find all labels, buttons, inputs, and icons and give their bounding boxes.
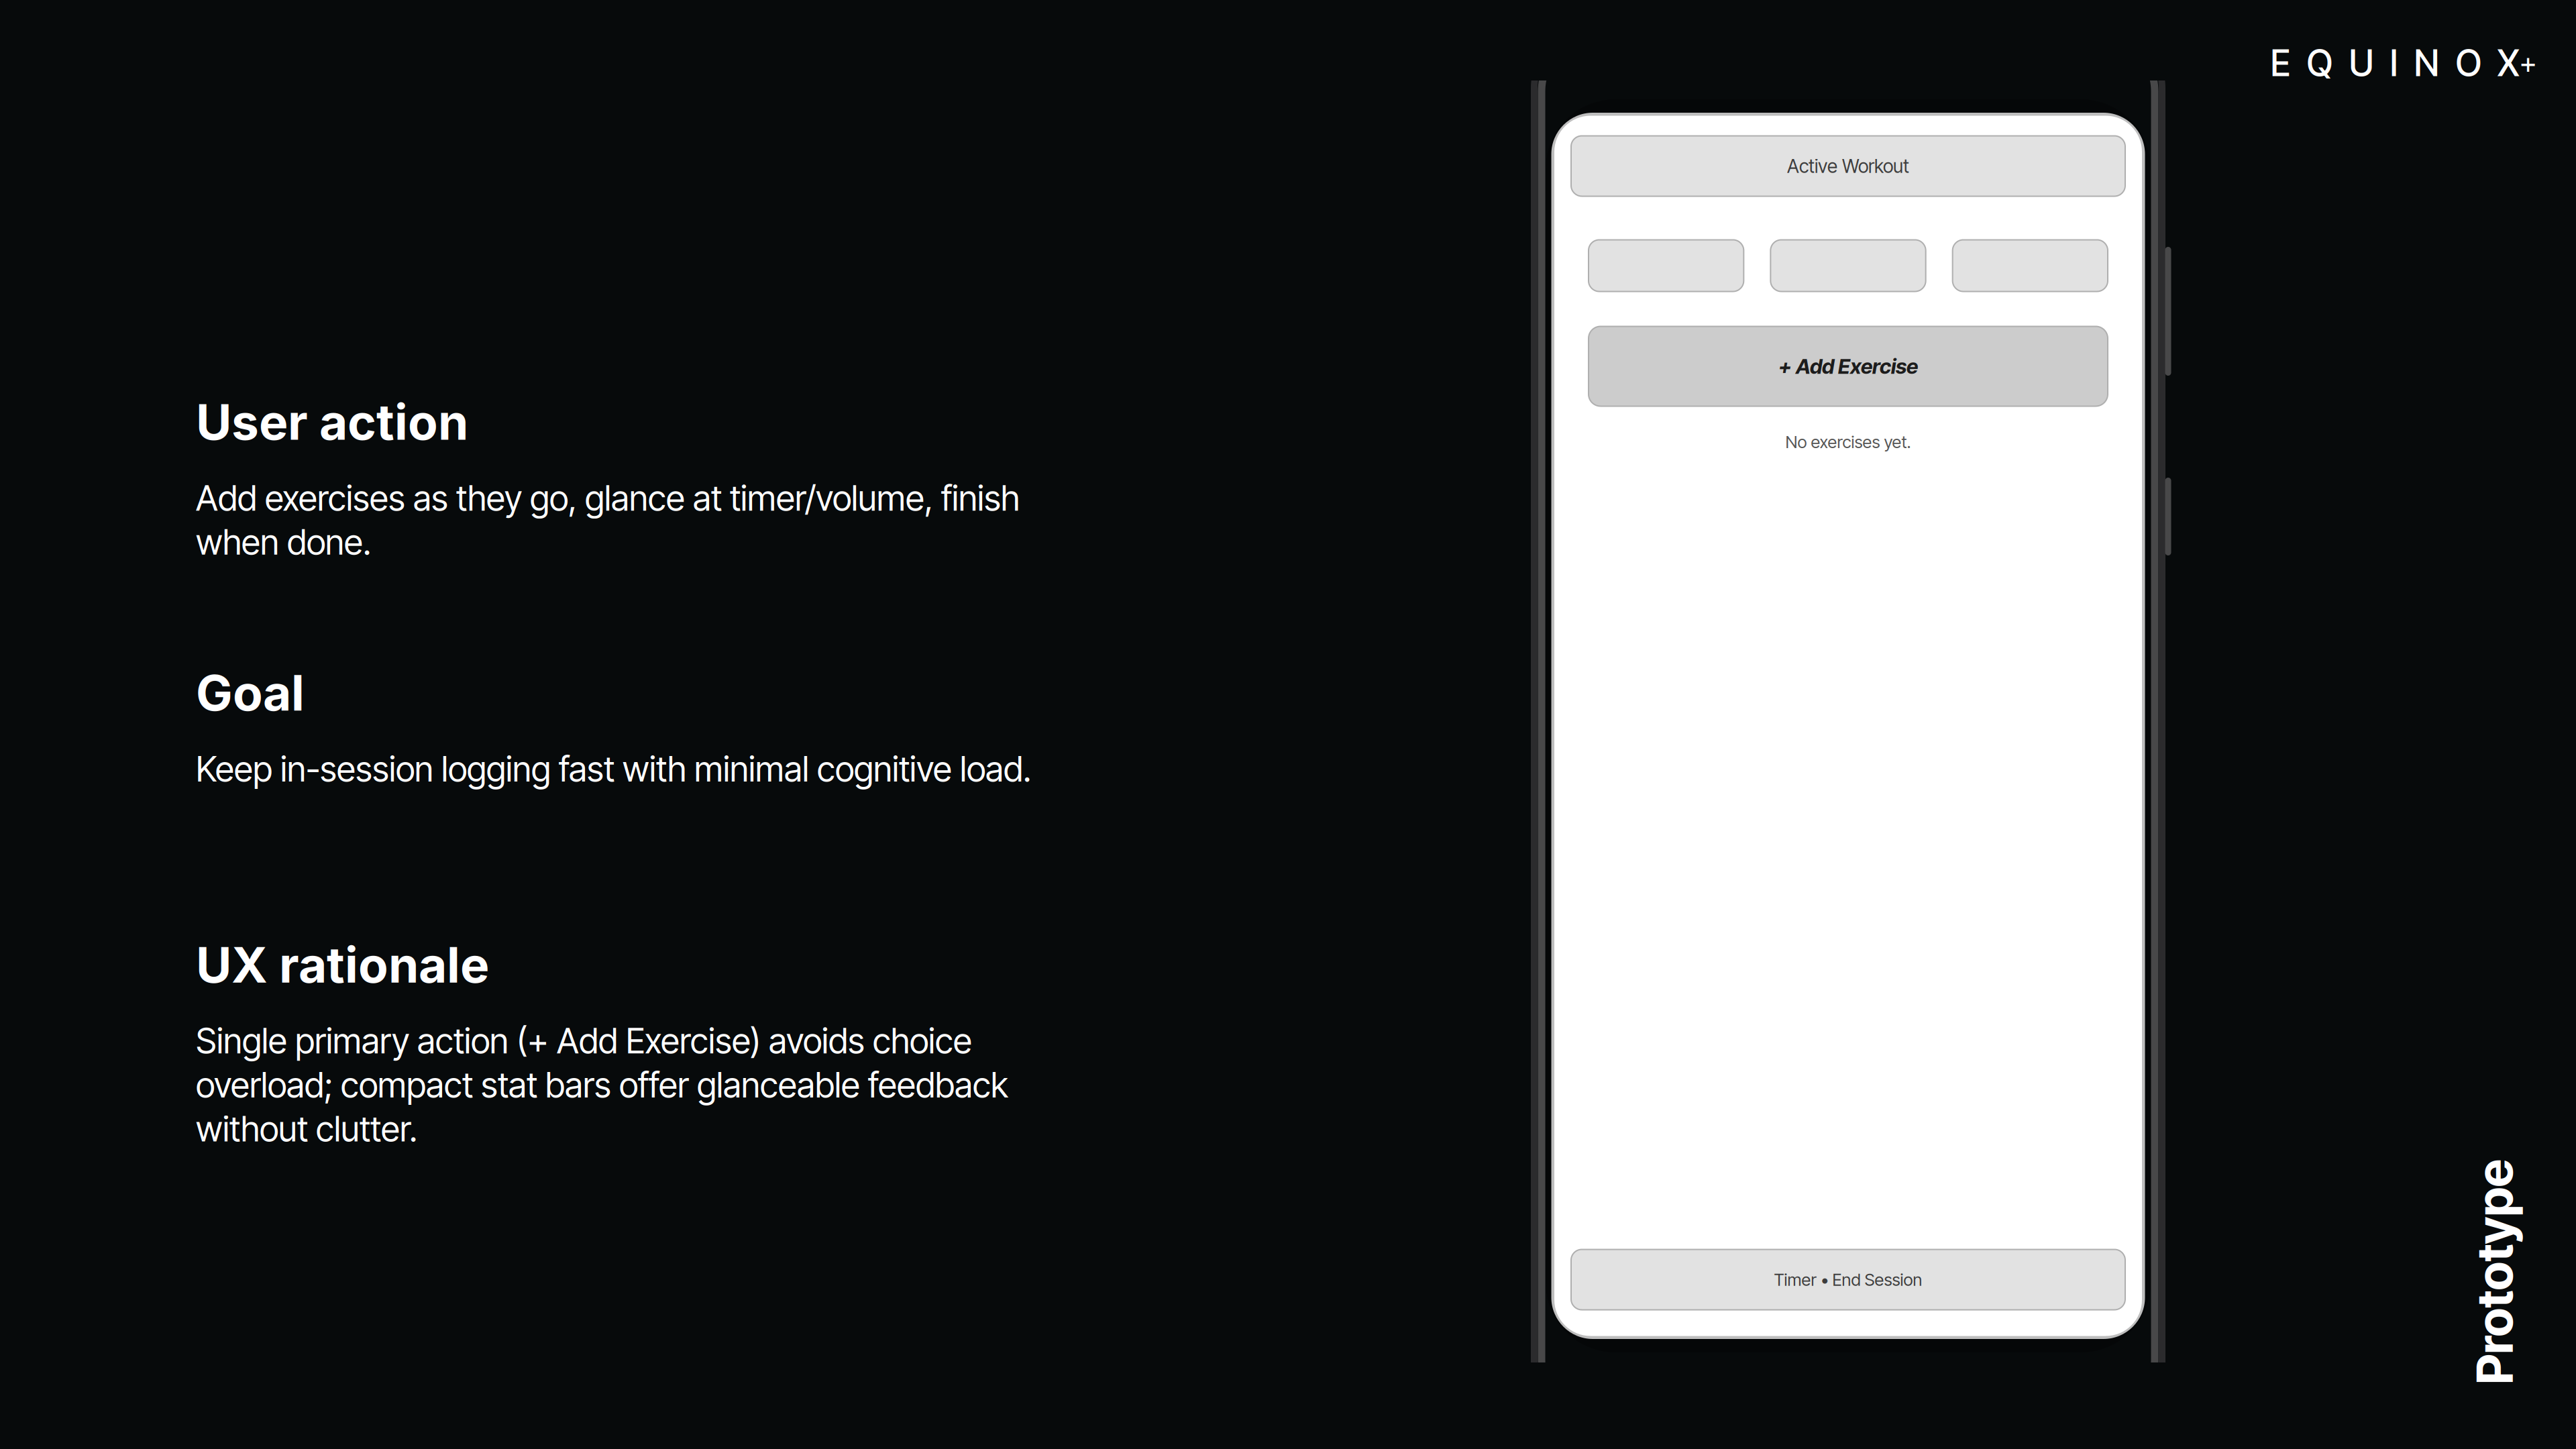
staticText: Timer • End Session [1774,1269,1922,1290]
staticText: UX rationale [196,935,489,994]
staticText: Prototype [2382,1242,2576,1302]
staticText: EQUINOX [2270,41,2519,85]
staticText: No exercises yet. [1785,432,1911,452]
button[interactable]: + Add Exercise [1589,326,2108,406]
button[interactable]: Elapsed time [1589,240,1744,291]
staticText: + [2519,46,2537,80]
button[interactable]: Timer • End Session [1571,1249,2125,1310]
staticText: + Add Exercise [1778,354,1918,379]
staticText: Single primary action (+ Add Exercise) a… [196,1020,1008,1150]
staticText: Add exercises as they go, glance at time… [196,477,1020,563]
staticText: Keep in-session logging fast with minima… [196,748,1031,790]
button[interactable]: Active Workout [1571,136,2125,196]
staticText: User action [196,392,468,451]
staticText: Goal [196,663,305,722]
button[interactable]: Total volume [1771,240,1926,291]
button[interactable]: Set count [1953,240,2108,291]
staticText: Active Workout [1787,155,1909,177]
